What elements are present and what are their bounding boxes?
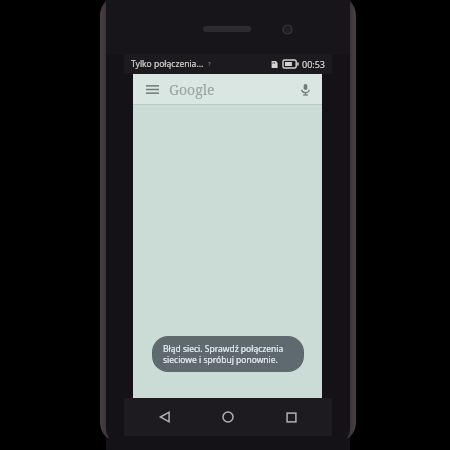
staticText: Google bbox=[169, 80, 215, 99]
button[interactable]: Home bbox=[206, 398, 250, 436]
button[interactable]: Menu bbox=[142, 79, 162, 99]
button[interactable]: Menu bbox=[133, 74, 322, 104]
staticText: Tylko połączenia... bbox=[131, 58, 204, 70]
staticText: 00:53 bbox=[302, 58, 326, 70]
button[interactable]: Voice search bbox=[294, 78, 316, 100]
staticText: Błąd sieci. Sprawdź połączenia sieciowe … bbox=[163, 343, 293, 365]
button[interactable]: Recent apps bbox=[269, 398, 313, 436]
button[interactable]: Back bbox=[143, 398, 187, 436]
staticText: ? bbox=[208, 60, 211, 68]
button[interactable]: Błąd sieci. Sprawdź połączenia sieciowe … bbox=[152, 336, 304, 372]
